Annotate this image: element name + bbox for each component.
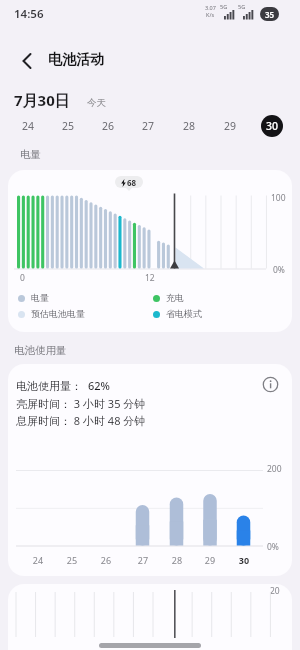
staticText: 30	[236, 554, 252, 566]
button[interactable]	[14, 47, 42, 75]
staticText: 28	[183, 119, 196, 133]
staticText: 7月30日	[14, 90, 70, 110]
staticText: 24	[30, 554, 46, 566]
staticText: 20	[270, 585, 280, 597]
staticText: 电量	[31, 292, 49, 303]
staticText: 5G	[238, 3, 246, 10]
staticText: 电池使用量：	[16, 378, 88, 393]
staticText: 24	[22, 119, 35, 133]
staticText: 35	[265, 9, 275, 20]
button[interactable]: 28	[169, 112, 210, 140]
staticText: 25	[64, 554, 80, 566]
button[interactable]: 30	[251, 112, 292, 140]
staticText: 息屏时间： 8 小时 48 分钟	[16, 413, 146, 428]
staticText: 27	[135, 554, 151, 566]
staticText: 0%	[273, 264, 285, 276]
staticText: 26	[98, 554, 114, 566]
button[interactable]: 26	[88, 112, 128, 140]
staticText: 5G	[220, 3, 228, 10]
button[interactable]: 24	[8, 112, 48, 140]
staticText: 30	[266, 119, 279, 133]
button[interactable]: 27	[128, 112, 169, 140]
staticText: 电量	[20, 148, 41, 161]
staticText: 200	[267, 463, 282, 475]
staticText: 68	[127, 177, 137, 188]
staticText: 100	[271, 192, 286, 204]
staticText: 14:56	[14, 6, 44, 22]
staticText: 0%	[267, 541, 279, 553]
staticText: 0	[20, 272, 25, 284]
staticText: 29	[202, 554, 218, 566]
button[interactable]: 29	[210, 112, 251, 140]
staticText: K/s	[206, 11, 215, 18]
staticText: 今天	[87, 97, 106, 109]
staticText: 12	[145, 272, 155, 284]
staticText: 26	[102, 119, 115, 133]
staticText: 28	[169, 554, 185, 566]
button[interactable]	[262, 376, 279, 393]
staticText: 电池使用量	[14, 344, 67, 357]
staticText: 3.07	[205, 4, 216, 11]
staticText: 29	[224, 119, 237, 133]
staticText: 省电模式	[166, 308, 202, 319]
button[interactable]: 25	[48, 112, 88, 140]
staticText: 预估电池电量	[31, 308, 85, 319]
staticText: 27	[142, 119, 155, 133]
staticText: 62%	[88, 378, 110, 393]
staticText: 25	[62, 119, 75, 133]
staticText: 充电	[166, 292, 184, 303]
staticText: 电池活动	[48, 51, 104, 69]
staticText: 亮屏时间： 3 小时 35 分钟	[16, 396, 146, 411]
